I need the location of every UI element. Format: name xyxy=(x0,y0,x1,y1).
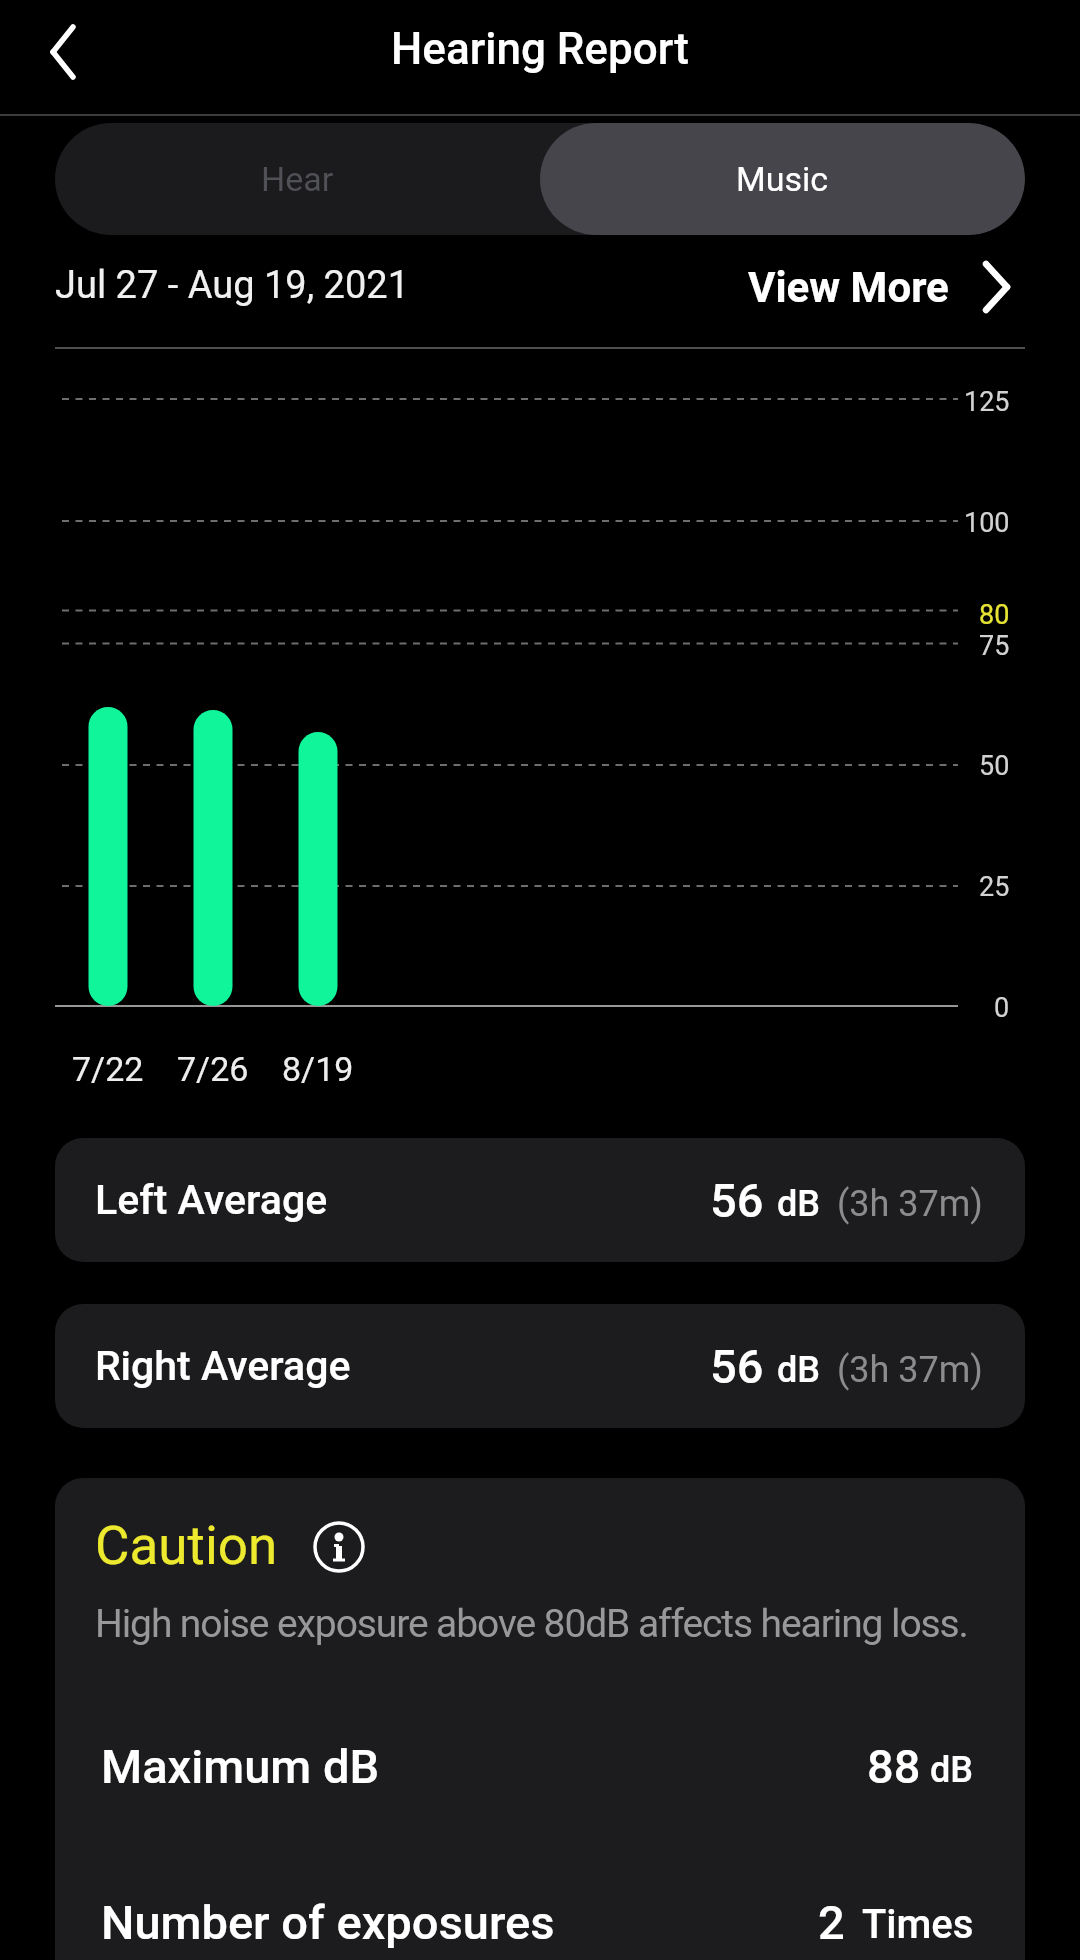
staticText: 25 xyxy=(979,871,1010,903)
staticText: Hear xyxy=(261,159,334,199)
button[interactable]: Left Average xyxy=(55,1138,1025,1262)
staticText: 0 xyxy=(994,992,1010,1024)
staticText: Maximum dB xyxy=(101,1739,380,1794)
staticText: Number of exposures xyxy=(101,1895,555,1950)
staticText: 88 xyxy=(867,1739,921,1794)
button[interactable]: Caution xyxy=(95,1515,278,1577)
staticText: (3h 37m) xyxy=(837,1349,983,1391)
staticText: High noise exposure above 80dB affects h… xyxy=(95,1601,968,1647)
staticText: 7/22 xyxy=(72,1049,144,1089)
staticText: Jul 27 - Aug 19, 2021 xyxy=(55,263,409,308)
button[interactable]: Hear xyxy=(55,123,540,235)
staticText: 125 xyxy=(964,386,1010,418)
staticText: 75 xyxy=(979,630,1010,662)
staticText: Right Average xyxy=(95,1342,351,1390)
staticText: 80 xyxy=(979,599,1010,631)
staticText: 7/26 xyxy=(177,1049,249,1089)
button[interactable] xyxy=(28,17,98,87)
button[interactable]: View More xyxy=(0,255,1010,319)
staticText: dB xyxy=(777,1349,821,1391)
staticText: dB xyxy=(930,1749,974,1791)
staticText: (3h 37m) xyxy=(837,1183,983,1225)
staticText: Times xyxy=(862,1901,974,1948)
staticText: 50 xyxy=(979,750,1010,782)
staticText: dB xyxy=(777,1183,821,1225)
staticText: 56 xyxy=(710,1339,764,1394)
staticText: 100 xyxy=(964,507,1010,539)
staticText: Music xyxy=(736,159,829,199)
staticText: View More xyxy=(748,263,949,312)
staticText: Hearing Report xyxy=(391,23,689,75)
button[interactable]: Music xyxy=(540,123,1025,235)
button[interactable]: Right Average xyxy=(55,1304,1025,1428)
staticText: 8/19 xyxy=(282,1049,354,1089)
staticText: Left Average xyxy=(95,1176,328,1224)
staticText: 2 xyxy=(818,1895,845,1950)
staticText: 56 xyxy=(710,1173,764,1228)
